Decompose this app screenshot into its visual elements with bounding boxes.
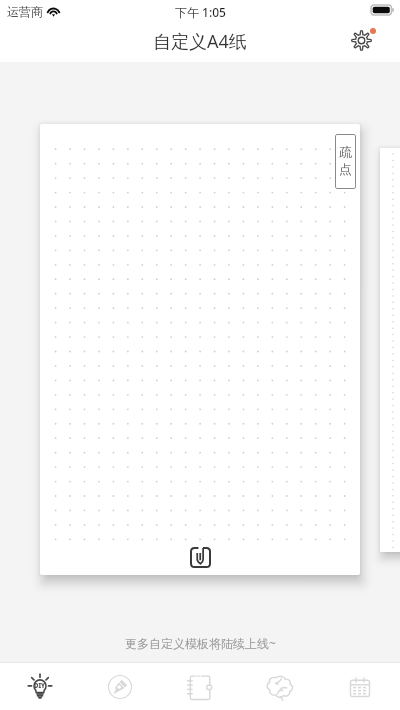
button[interactable]: Draw	[80, 663, 160, 710]
button[interactable]: Calendar	[320, 663, 400, 710]
staticText: 自定义A4纸	[153, 29, 247, 54]
staticText: 下午 1:05	[175, 4, 226, 20]
button[interactable]: Brain	[240, 663, 320, 710]
staticText: 疏 点	[339, 144, 352, 178]
button[interactable]: Settings	[342, 24, 380, 62]
staticText: 运营商	[7, 4, 43, 19]
staticText: 更多自定义模板将陆续上线~	[125, 635, 276, 651]
button[interactable]: Notebook	[160, 663, 240, 710]
staticText: DIY	[34, 682, 46, 690]
button[interactable]: DIY	[0, 663, 80, 710]
button[interactable]: 疏 点	[40, 124, 360, 575]
